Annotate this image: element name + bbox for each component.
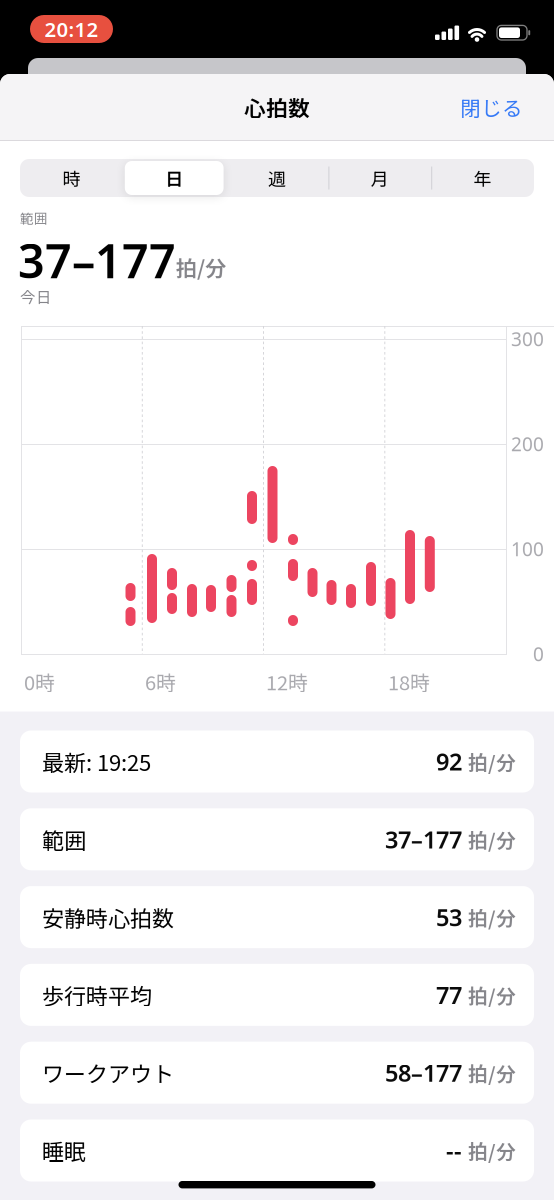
staticText: 12時 [266, 667, 308, 696]
staticText: 拍/分 [468, 1136, 516, 1165]
staticText: 今日 [20, 285, 52, 307]
staticText: 300 [511, 326, 544, 352]
staticText: 週 [268, 165, 286, 191]
staticText: 心拍数 [244, 91, 310, 122]
staticText: 92 [436, 745, 462, 777]
button[interactable]: 20:12 [30, 15, 113, 43]
staticText: 歩行時平均 [42, 979, 152, 1011]
staticText: 37–177 [18, 228, 176, 292]
staticText: -- [446, 1134, 462, 1166]
button[interactable]: 時 [20, 159, 123, 197]
button[interactable]: 閉じる [460, 74, 523, 140]
staticText: 0 [533, 641, 544, 667]
staticText: 58–177 [385, 1057, 462, 1089]
button[interactable]: ワークアウト [20, 1042, 534, 1104]
staticText: 200 [511, 431, 544, 457]
staticText: 0時 [24, 667, 55, 696]
staticText: 拍/分 [468, 1059, 516, 1087]
staticText: 範囲 [42, 823, 86, 855]
staticText: 53 [436, 901, 462, 933]
button[interactable]: 最新: 19:25 [20, 730, 534, 792]
staticText: 日 [165, 165, 183, 191]
staticText: 18時 [388, 667, 430, 696]
staticText: 時 [62, 165, 80, 191]
staticText: 閉じる [460, 92, 523, 122]
button[interactable]: 週 [226, 159, 328, 197]
staticText: 拍/分 [176, 252, 226, 282]
staticText: 拍/分 [468, 825, 516, 853]
staticText: 拍/分 [468, 981, 516, 1009]
staticText: 睡眠 [42, 1135, 86, 1166]
staticText: 100 [511, 536, 544, 562]
button[interactable]: 睡眠 [20, 1119, 534, 1181]
staticText: ワークアウト [42, 1057, 174, 1089]
button[interactable]: 年 [431, 159, 534, 197]
button[interactable]: 歩行時平均 [20, 964, 534, 1026]
button[interactable]: 日 [123, 159, 226, 197]
button[interactable]: 範囲 [20, 808, 534, 870]
staticText: 拍/分 [468, 747, 516, 776]
staticText: 最新: 19:25 [42, 746, 151, 777]
staticText: 拍/分 [468, 903, 516, 931]
button[interactable]: 安静時心拍数 [20, 886, 534, 948]
staticText: 20:12 [44, 15, 98, 43]
button[interactable]: 月 [328, 159, 431, 197]
staticText: 77 [436, 979, 462, 1011]
staticText: 37–177 [385, 823, 462, 855]
staticText: 6時 [145, 667, 176, 696]
staticText: 月 [371, 165, 389, 191]
staticText: 範囲 [20, 208, 48, 227]
staticText: 年 [474, 165, 492, 191]
staticText: 安静時心拍数 [42, 901, 174, 933]
